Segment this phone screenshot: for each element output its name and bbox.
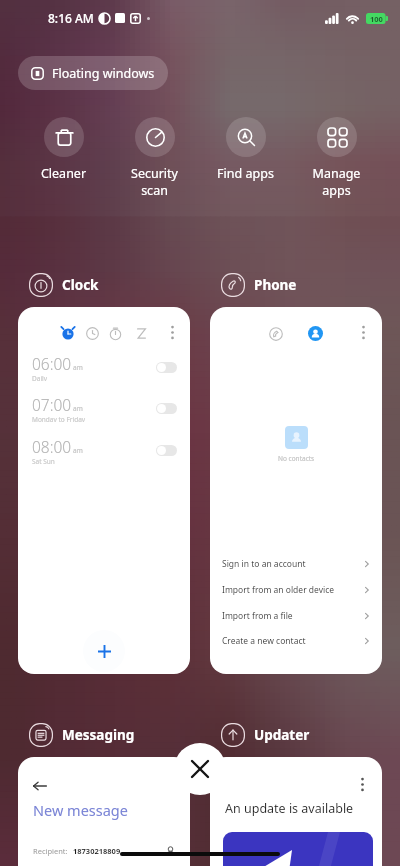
staticText: Create a new contact: [222, 635, 306, 647]
staticText: Daily: [32, 374, 48, 381]
staticText: Cleaner: [18, 165, 109, 182]
staticText: 07:00: [32, 394, 72, 415]
staticText: An update is available: [225, 800, 354, 817]
staticText: 06:00: [32, 353, 72, 374]
button[interactable]: Find apps: [200, 117, 291, 182]
staticText: New message: [33, 800, 128, 820]
staticText: am: [73, 363, 83, 372]
button[interactable]: Back: [32, 778, 48, 794]
button[interactable]: Stopwatch: [109, 327, 122, 340]
button[interactable]: Floating windows: [18, 56, 168, 90]
staticText: 18730218809: [73, 846, 121, 856]
button[interactable]: Updater: [221, 718, 310, 752]
staticText: Manage apps: [291, 165, 382, 199]
button[interactable]: 07:00: [32, 394, 177, 422]
button[interactable]: Create a new contact: [222, 629, 371, 653]
button[interactable]: 08:00: [32, 436, 177, 464]
staticText: Floating windows: [52, 65, 155, 82]
staticText: 100: [370, 14, 383, 24]
staticText: No contacts: [278, 454, 315, 463]
button[interactable]: Manage apps: [291, 117, 382, 199]
button[interactable]: More options: [168, 326, 177, 339]
staticText: Recipient:: [33, 846, 68, 856]
staticText: 08:00: [32, 436, 72, 457]
button[interactable]: More options: [359, 326, 368, 339]
button[interactable]: Clock: [29, 268, 99, 302]
staticText: Messaging: [62, 726, 135, 744]
staticText: Updater: [254, 726, 310, 744]
staticText: Find apps: [200, 165, 291, 182]
staticText: 8:16 AM: [48, 10, 94, 26]
button[interactable]: More options: [358, 778, 367, 791]
button[interactable]: Security scan: [109, 117, 200, 199]
button[interactable]: Alarm: [18, 307, 190, 674]
button[interactable]: Messaging: [29, 718, 135, 752]
staticText: am: [73, 404, 83, 413]
staticText: Import from an older device: [222, 584, 335, 596]
button[interactable]: Clock: [86, 327, 99, 340]
staticText: Phone: [254, 276, 297, 294]
staticText: Sign in to an account: [222, 558, 306, 570]
button[interactable]: Import from an older device: [222, 578, 371, 602]
button[interactable]: Recents: [269, 327, 283, 341]
button[interactable]: Import from a file: [222, 604, 371, 628]
button[interactable]: Sign in to an account: [222, 552, 371, 576]
button[interactable]: Cleaner: [18, 117, 109, 182]
button[interactable]: Recents: [210, 307, 382, 674]
staticText: Monday to Friday: [32, 415, 86, 422]
button[interactable]: Contacts: [308, 326, 323, 341]
staticText: Import from a file: [222, 610, 293, 622]
button[interactable]: Alarm: [61, 326, 75, 340]
button[interactable]: Back: [18, 757, 190, 866]
button[interactable]: Phone: [221, 268, 297, 302]
button[interactable]: More options: [210, 757, 382, 866]
staticText: Security scan: [109, 165, 200, 199]
button[interactable]: Add alarm: [83, 630, 125, 672]
staticText: am: [73, 446, 83, 455]
staticText: Clock: [62, 276, 99, 294]
button[interactable]: Timer: [135, 327, 148, 340]
button[interactable]: 06:00: [32, 353, 177, 381]
button[interactable]: Close all: [174, 743, 226, 795]
staticText: Sat Sun: [32, 457, 55, 464]
